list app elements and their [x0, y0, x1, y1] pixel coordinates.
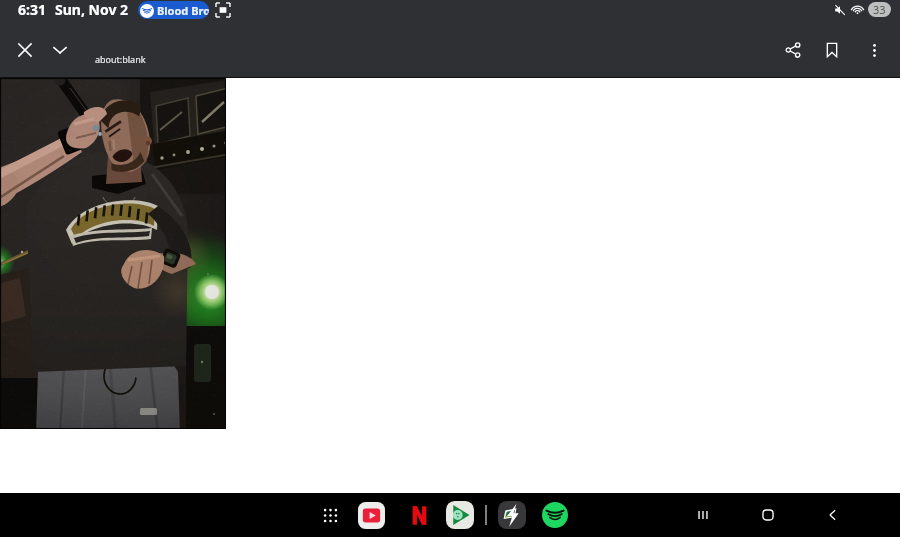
button[interactable]: Netflix — [402, 498, 436, 532]
button[interactable]: More options — [855, 31, 893, 69]
button[interactable]: Spotify — [538, 498, 572, 532]
staticText: about:blank — [95, 53, 146, 65]
button[interactable]: Close — [8, 33, 42, 67]
button[interactable]: YouTube — [354, 498, 388, 532]
button[interactable]: Back — [811, 493, 855, 537]
button[interactable]: Recents — [681, 493, 725, 537]
button[interactable]: Bookmark — [813, 31, 851, 69]
staticText: 6:31 — [18, 0, 46, 19]
button[interactable]: Collapse — [43, 33, 77, 67]
button[interactable]: Bolt app — [495, 498, 529, 532]
button[interactable]: Google Play Games — [443, 498, 477, 532]
button[interactable]: Blood Bro — [138, 1, 209, 19]
button[interactable]: Screenshot — [216, 3, 230, 17]
staticText: Blood Bro — [157, 3, 209, 18]
staticText: 33 — [873, 2, 886, 17]
button[interactable]: Home — [746, 493, 790, 537]
button[interactable]: All apps — [313, 498, 347, 532]
staticText: Sun, Nov 2 — [55, 0, 129, 19]
button[interactable]: Share — [774, 31, 812, 69]
